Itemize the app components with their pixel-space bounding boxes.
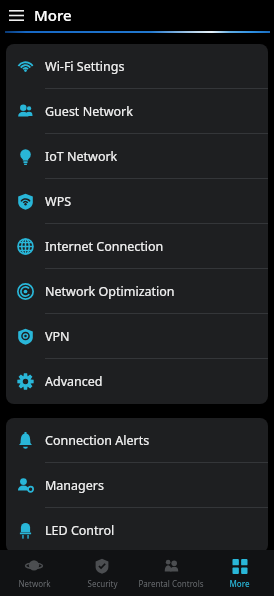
button[interactable]: More bbox=[205, 550, 274, 596]
button[interactable]: Managers bbox=[6, 463, 268, 508]
button[interactable]: Open navigation menu bbox=[3, 2, 29, 28]
button[interactable]: Security bbox=[68, 550, 136, 596]
staticText: Wi-Fi Settings bbox=[45, 58, 125, 75]
staticText: IoT Network bbox=[45, 148, 118, 165]
button[interactable]: Guest Network bbox=[6, 89, 268, 134]
button[interactable]: Wi-Fi Settings bbox=[6, 44, 268, 89]
button[interactable]: LED Control bbox=[6, 508, 268, 553]
button[interactable]: Parental Controls bbox=[136, 550, 205, 596]
staticText: More bbox=[229, 578, 250, 589]
staticText: Security bbox=[87, 578, 118, 589]
staticText: Network bbox=[18, 578, 51, 589]
staticText: More bbox=[34, 5, 72, 25]
staticText: Guest Network bbox=[45, 103, 133, 120]
staticText: Network Optimization bbox=[45, 283, 175, 300]
button[interactable]: Connection Alerts bbox=[6, 418, 268, 463]
button[interactable]: Network bbox=[0, 550, 68, 596]
staticText: Parental Controls bbox=[138, 578, 204, 589]
staticText: Advanced bbox=[45, 373, 103, 390]
staticText: VPN bbox=[45, 328, 70, 345]
staticText: Managers bbox=[45, 477, 104, 494]
button[interactable]: Network Optimization bbox=[6, 269, 268, 314]
button[interactable]: IoT Network bbox=[6, 134, 268, 179]
button[interactable]: VPN bbox=[6, 314, 268, 359]
staticText: WPS bbox=[45, 193, 72, 210]
staticText: Connection Alerts bbox=[45, 432, 150, 449]
button[interactable]: Internet Connection bbox=[6, 224, 268, 269]
staticText: LED Control bbox=[45, 522, 115, 539]
button[interactable]: WPS bbox=[6, 179, 268, 224]
staticText: Internet Connection bbox=[45, 238, 164, 255]
button[interactable]: Advanced bbox=[6, 359, 268, 404]
